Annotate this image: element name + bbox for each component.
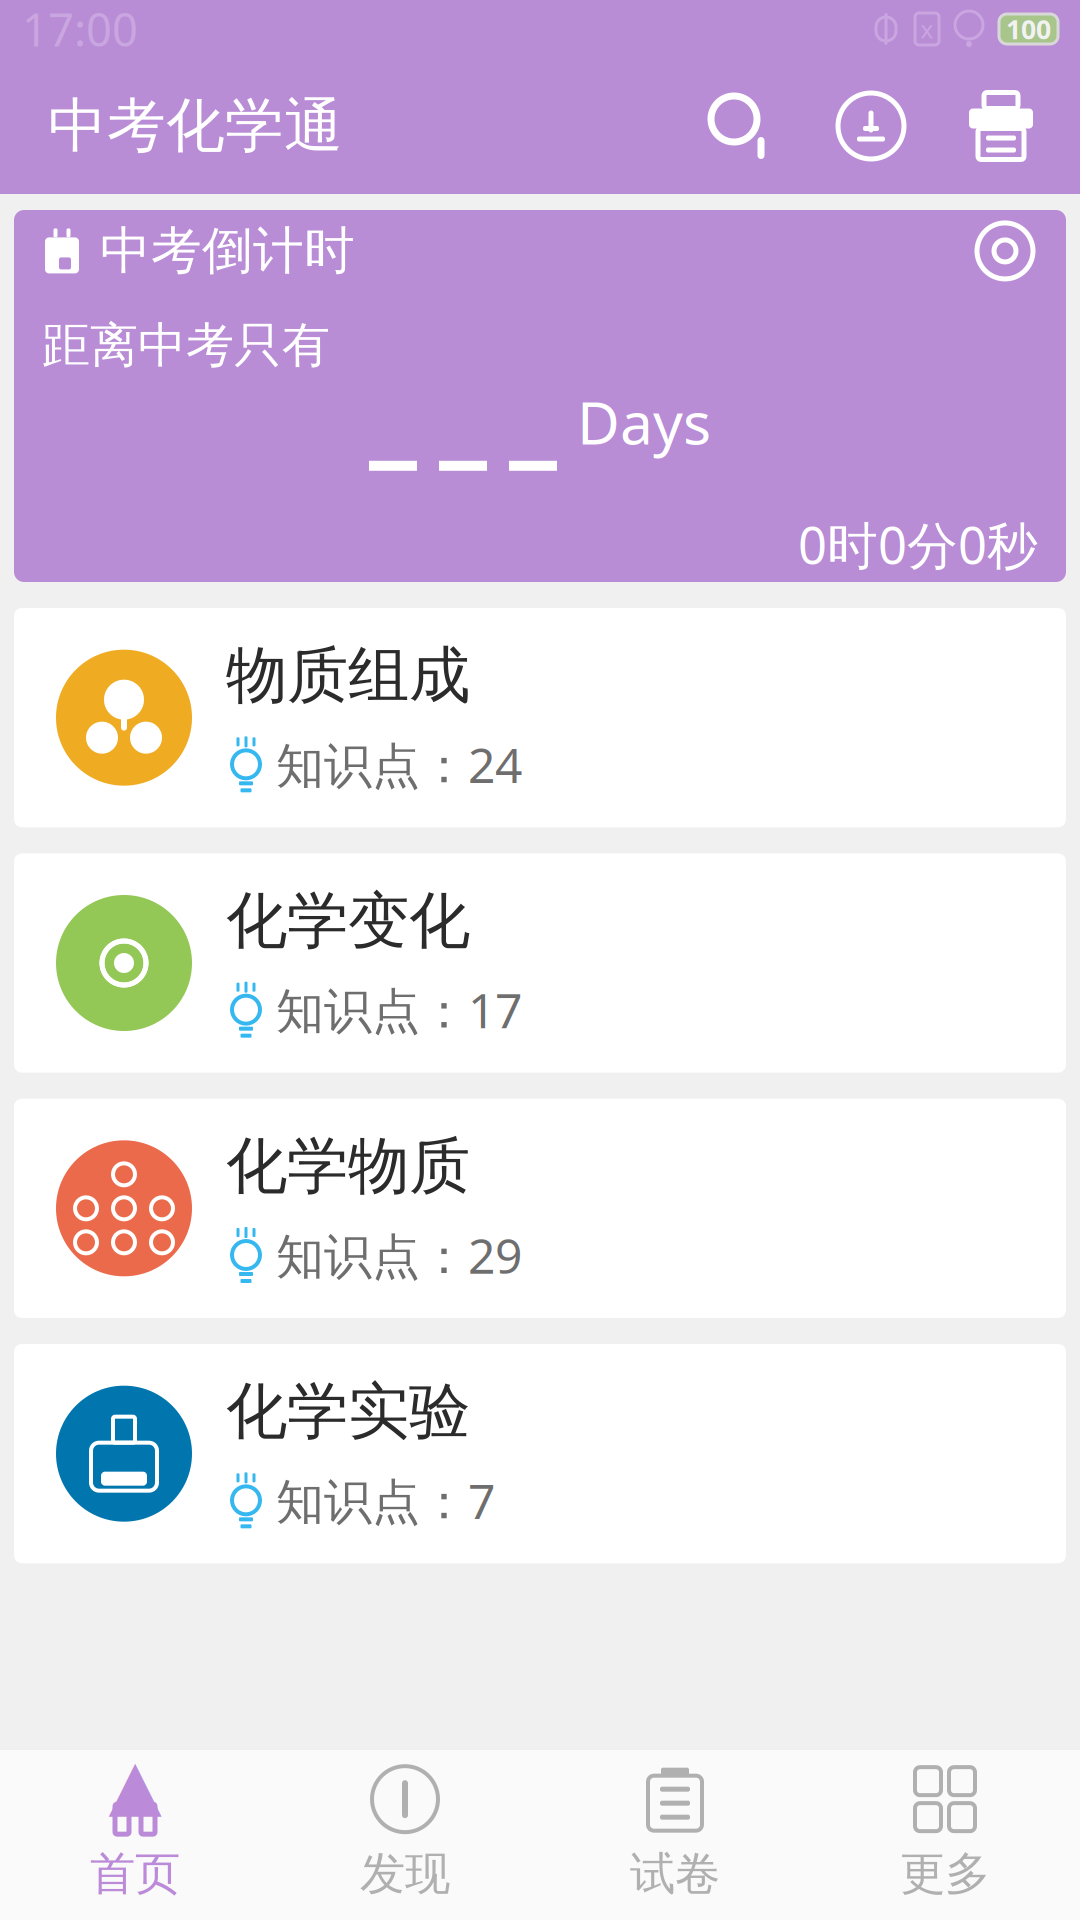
staticText: 知识点：17 (276, 978, 522, 1041)
staticText: 17:00 (22, 0, 138, 59)
button[interactable]: 化学实验 (14, 1344, 1066, 1563)
staticText: 试卷 (630, 1846, 720, 1902)
staticText: x (920, 13, 933, 45)
button[interactable]: 搜索 (704, 89, 778, 163)
staticText: Days (577, 383, 711, 461)
button[interactable]: 物质组成 (14, 608, 1066, 827)
staticText: 发现 (360, 1846, 450, 1902)
staticText: 中考化学通 (48, 90, 343, 162)
button[interactable]: 更多 (810, 1746, 1080, 1920)
staticText: 化学物质 (226, 1129, 470, 1204)
staticText: 100 (1006, 11, 1051, 47)
button[interactable]: ▲ (0, 1746, 270, 1920)
button[interactable]: 设置 (972, 218, 1038, 284)
staticText: 知识点：24 (276, 732, 522, 796)
staticText: 首页 (90, 1846, 180, 1902)
staticText: 知识点：29 (276, 1223, 522, 1287)
staticText: 物质组成 (226, 638, 470, 713)
staticText: 0时0分0秒 (798, 511, 1038, 578)
button[interactable]: 下载 (834, 89, 908, 163)
button[interactable]: 试卷 (540, 1746, 810, 1920)
staticText: ▲ (108, 1745, 161, 1823)
button[interactable]: 化学物质 (14, 1099, 1066, 1318)
button[interactable]: 化学变化 (14, 853, 1066, 1073)
staticText: 知识点：7 (276, 1468, 495, 1532)
button[interactable]: 发现 (270, 1746, 540, 1920)
staticText: 中考倒计时 (100, 220, 355, 282)
staticText: 化学实验 (226, 1374, 470, 1449)
button[interactable]: 打印 (964, 84, 1038, 168)
staticText: 化学变化 (226, 883, 470, 959)
staticText: 更多 (900, 1846, 990, 1902)
staticText: 距离中考只有 (42, 316, 330, 375)
